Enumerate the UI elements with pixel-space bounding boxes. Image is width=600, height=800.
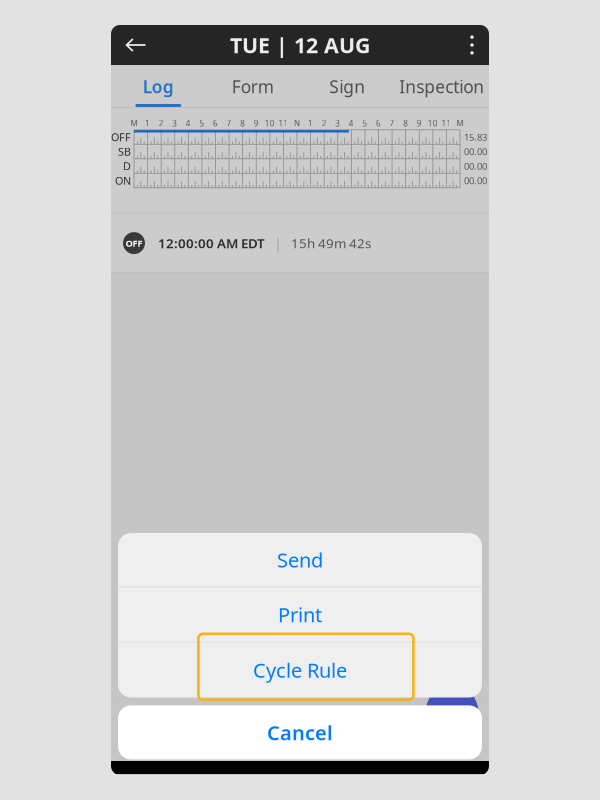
staticText: Cancel	[267, 719, 333, 746]
staticText: Print	[278, 601, 322, 628]
staticText: 9	[254, 118, 259, 129]
staticText: 2	[322, 118, 327, 129]
staticText: 11	[441, 118, 451, 129]
staticText: N	[294, 118, 300, 129]
staticText: 7	[227, 118, 232, 129]
staticText: OFF	[111, 130, 131, 144]
staticText: 15h 49m 42s	[291, 234, 371, 252]
staticText: 5	[362, 118, 367, 129]
staticText: |	[274, 233, 282, 253]
button[interactable]: More options	[455, 25, 489, 65]
staticText: 10	[265, 118, 275, 129]
staticText: 00.00	[464, 145, 487, 158]
staticText: 15.83	[464, 131, 487, 143]
staticText: TUE | 12 AUG	[230, 31, 370, 59]
staticText: ON	[115, 173, 131, 188]
button[interactable]: Form	[205, 65, 300, 107]
staticText: 3	[335, 118, 340, 129]
staticText: D	[123, 159, 131, 173]
button[interactable]: Log	[111, 65, 205, 107]
staticText: Form	[232, 75, 274, 98]
staticText: 1	[308, 118, 313, 129]
staticText: Log	[143, 75, 174, 98]
staticText: 9	[417, 118, 422, 129]
staticText: 00.00	[464, 160, 487, 172]
staticText: Cycle Rule	[253, 657, 347, 683]
staticText: Sign	[329, 75, 365, 98]
staticText: 3	[172, 118, 177, 129]
staticText: 1	[145, 118, 150, 129]
staticText: Inspection	[399, 75, 484, 98]
staticText: 12:00:00 AM EDT	[158, 234, 265, 252]
button[interactable]: Send	[118, 533, 482, 587]
staticText: M	[456, 118, 463, 129]
staticText: 8	[403, 118, 408, 129]
button[interactable]: Back	[114, 25, 158, 65]
staticText: OFF	[125, 237, 142, 249]
staticText: 6	[213, 118, 218, 129]
button[interactable]: Cancel	[118, 705, 482, 759]
button[interactable]: Sign	[300, 65, 394, 107]
staticText: 10	[428, 118, 438, 129]
staticText: 00.00	[464, 174, 487, 187]
staticText: 5	[199, 118, 204, 129]
button[interactable]: Print	[118, 587, 482, 642]
staticText: 4	[349, 118, 354, 129]
button[interactable]: OFF	[111, 214, 489, 273]
staticText: 7	[390, 118, 395, 129]
staticText: 8	[240, 118, 245, 129]
staticText: Send	[277, 547, 323, 573]
staticText: 6	[376, 118, 381, 129]
button[interactable]: Inspection	[394, 65, 489, 107]
staticText: SB	[118, 144, 131, 159]
button[interactable]: Cycle Rule	[118, 642, 482, 697]
staticText: 4	[186, 118, 191, 129]
staticText: 11	[278, 118, 288, 129]
staticText: M	[130, 118, 137, 129]
staticText: 2	[159, 118, 164, 129]
